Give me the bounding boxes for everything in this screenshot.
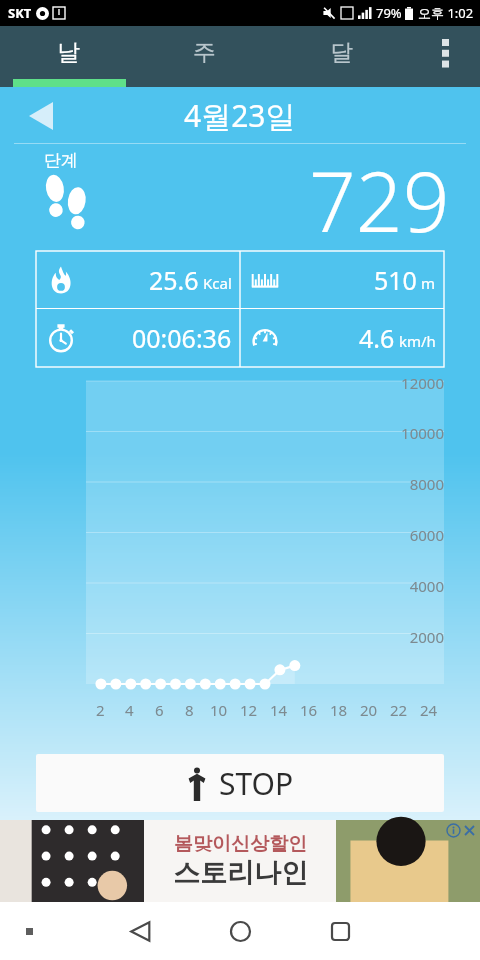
- button[interactable]: STOP: [36, 754, 444, 812]
- button[interactable]: Home: [190, 902, 290, 960]
- button[interactable]: 25.6: [36, 251, 240, 308]
- button[interactable]: 날: [0, 26, 136, 79]
- staticText: 12000: [372, 373, 444, 393]
- staticText: 2000: [372, 627, 444, 647]
- button[interactable]: 4.6: [240, 309, 444, 367]
- staticText: 10000: [372, 423, 444, 443]
- staticText: km/h: [399, 331, 436, 351]
- staticText: 주: [193, 38, 216, 67]
- other: Close ad: [463, 824, 476, 837]
- button[interactable]: Back: [90, 902, 190, 960]
- staticText: 달: [330, 38, 353, 67]
- staticText: 16: [300, 700, 318, 720]
- staticText: 오후 1:02: [418, 4, 474, 22]
- staticText: 4월23일: [184, 95, 296, 136]
- staticText: 봄맞이신상할인: [174, 832, 307, 856]
- staticText: 단계: [44, 150, 78, 171]
- staticText: 20: [360, 700, 378, 720]
- staticText: m: [421, 273, 436, 293]
- staticText: 14: [270, 700, 288, 720]
- button[interactable]: Recent apps: [290, 902, 390, 960]
- staticText: 22: [390, 700, 408, 720]
- staticText: SKT: [8, 4, 32, 22]
- button[interactable]: More options: [410, 26, 480, 79]
- staticText: 4: [125, 700, 134, 720]
- staticText: 날: [57, 38, 80, 67]
- button[interactable]: 510: [240, 251, 444, 308]
- staticText: 00:06:36: [132, 321, 232, 355]
- staticText: 10: [210, 700, 228, 720]
- staticText: STOP: [219, 763, 294, 804]
- staticText: 6: [155, 700, 164, 720]
- staticText: 8: [185, 700, 194, 720]
- staticText: 79%: [376, 4, 402, 22]
- staticText: 4000: [372, 576, 444, 596]
- staticText: 510: [374, 263, 417, 297]
- staticText: 12: [240, 700, 258, 720]
- button[interactable]: Previous day: [20, 95, 62, 137]
- staticText: 4.6: [359, 321, 395, 355]
- button[interactable]: 달: [273, 26, 410, 79]
- staticText: 2: [96, 700, 105, 720]
- button[interactable]: 봄맞이신상할인: [0, 820, 480, 902]
- staticText: 6000: [372, 525, 444, 545]
- staticText: 스토리나인: [173, 856, 308, 890]
- button[interactable]: 00:06:36: [36, 309, 240, 367]
- button[interactable]: 주: [136, 26, 273, 79]
- staticText: 25.6: [149, 263, 199, 297]
- staticText: 18: [330, 700, 348, 720]
- staticText: 24: [420, 700, 438, 720]
- staticText: Kcal: [203, 273, 232, 293]
- staticText: 8000: [372, 474, 444, 494]
- staticText: 729: [309, 144, 450, 247]
